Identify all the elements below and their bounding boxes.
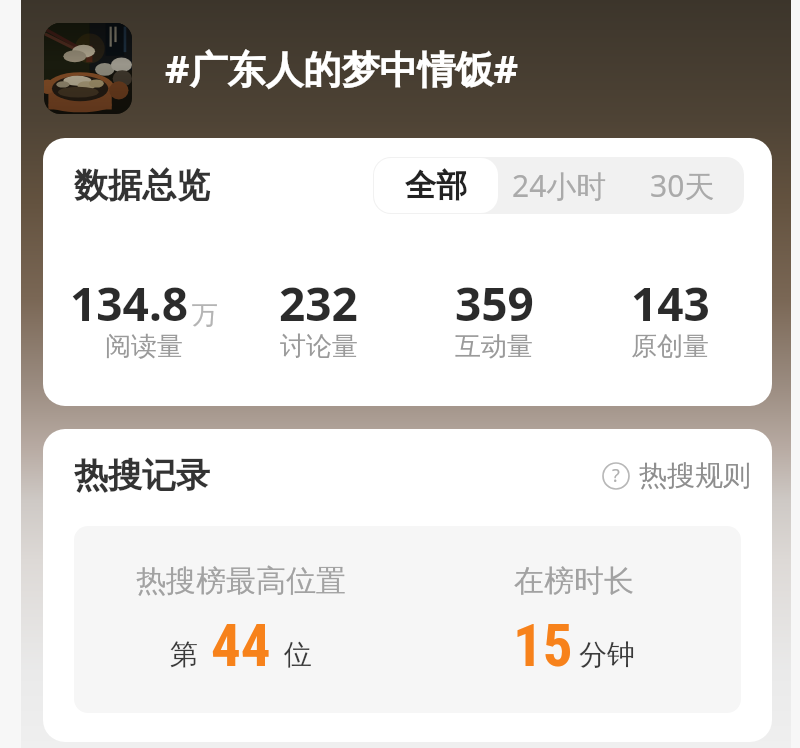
staticText: 互动量 [455, 330, 533, 363]
staticText: 15 [513, 611, 573, 680]
button[interactable]: 在榜时长 [407, 526, 741, 713]
staticText: 30天 [650, 165, 715, 206]
button[interactable]: 热搜规则 [602, 458, 751, 493]
staticText: 热搜榜最高位置 [136, 562, 346, 600]
button[interactable]: 话题封面 [44, 23, 132, 114]
staticText: 位 [284, 637, 312, 672]
staticText: 232 [279, 272, 358, 335]
staticText: 134.8 [70, 272, 189, 335]
staticText: 359 [455, 272, 534, 335]
button[interactable]: 359 [406, 272, 582, 368]
button[interactable]: 热搜榜最高位置 [74, 526, 407, 713]
staticText: 分钟 [579, 637, 635, 672]
staticText: 24小时 [512, 165, 607, 206]
staticText: 万 [192, 299, 218, 332]
button[interactable]: 134.8 [56, 272, 231, 368]
button[interactable]: 143 [582, 272, 758, 368]
staticText: 143 [631, 272, 710, 335]
staticText: 阅读量 [105, 330, 183, 363]
button[interactable]: 24小时 [498, 157, 620, 214]
staticText: 数据总览 [74, 164, 210, 207]
staticText: 第 [170, 637, 198, 672]
staticText: 讨论量 [280, 330, 358, 363]
staticText: 热搜记录 [74, 454, 210, 497]
staticText: 全部 [405, 166, 467, 205]
staticText: ? [612, 463, 620, 488]
button[interactable]: 30天 [620, 157, 744, 214]
staticText: #广东人的梦中情饭# [165, 42, 519, 94]
button[interactable]: 232 [231, 272, 406, 368]
staticText: 44 [211, 611, 271, 680]
button[interactable]: 全部 [374, 158, 498, 213]
staticText: 在榜时长 [514, 562, 634, 600]
staticText: 原创量 [631, 330, 709, 363]
staticText: 热搜规则 [639, 458, 751, 493]
